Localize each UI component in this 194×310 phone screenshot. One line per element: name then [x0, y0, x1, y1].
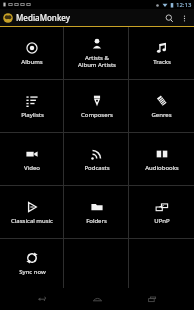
staticText: Podcasts: [84, 164, 110, 172]
button[interactable]: UPnP: [129, 186, 194, 238]
staticText: Artists & Album Artists: [78, 54, 116, 69]
button[interactable]: Classical music: [0, 186, 64, 238]
button[interactable]: Podcasts: [64, 133, 129, 185]
button[interactable]: Home: [84, 288, 110, 310]
staticText: UPnP: [154, 217, 170, 225]
staticText: Classical music: [11, 217, 53, 225]
staticText: Audiobooks: [145, 164, 179, 172]
staticText: 12:13: [176, 1, 192, 9]
button[interactable]: Folders: [64, 186, 129, 238]
button[interactable]: Back: [29, 288, 55, 310]
button[interactable]: Search: [161, 10, 177, 26]
button[interactable]: More options: [177, 11, 191, 25]
staticText: Composers: [81, 111, 113, 119]
button[interactable]: Composers: [64, 80, 129, 132]
button[interactable]: Audiobooks: [129, 133, 194, 185]
button[interactable]: Genres: [129, 80, 194, 132]
staticText: MediaMonkey: [16, 12, 71, 23]
button[interactable]: Video: [0, 133, 64, 185]
staticText: Tracks: [153, 58, 171, 66]
staticText: Playlists: [21, 111, 44, 119]
staticText: Folders: [86, 217, 107, 225]
button[interactable]: Albums: [0, 27, 64, 79]
button[interactable]: Artists & Album Artists: [64, 27, 129, 79]
button[interactable]: Playlists: [0, 80, 64, 132]
staticText: Genres: [151, 111, 172, 119]
staticText: Video: [24, 164, 40, 172]
button[interactable]: Recent apps: [139, 288, 165, 310]
button[interactable]: Sync now: [0, 239, 64, 288]
staticText: Albums: [21, 58, 43, 66]
staticText: Sync now: [19, 268, 46, 276]
button[interactable]: Tracks: [129, 27, 194, 79]
